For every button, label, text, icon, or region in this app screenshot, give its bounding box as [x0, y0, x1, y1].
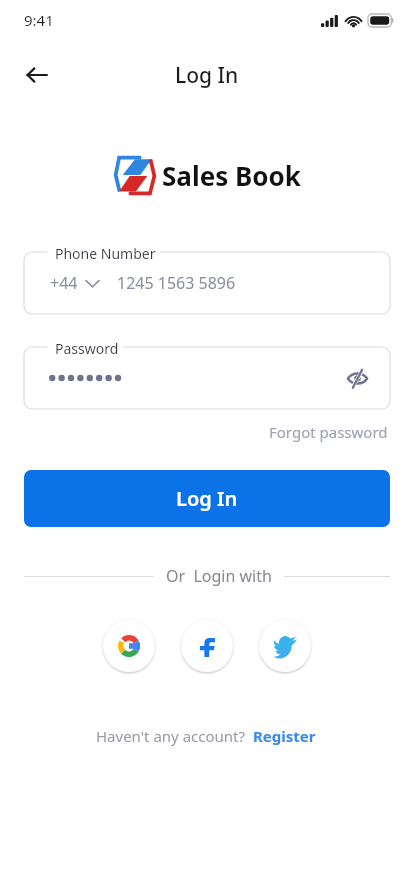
staticText: Sales Book — [162, 158, 301, 193]
button[interactable]: +44 — [48, 268, 101, 298]
staticText: +44 — [50, 272, 78, 294]
staticText: Log In — [175, 61, 239, 90]
button[interactable]: Sign in with Facebook — [181, 620, 233, 672]
button[interactable]: Sign in with Google — [103, 620, 155, 672]
button[interactable]: Log In — [24, 470, 390, 527]
staticText: Register — [253, 726, 316, 746]
staticText: Phone Number — [55, 244, 156, 263]
staticText: 1245 1563 5896 — [117, 272, 236, 294]
staticText: Haven't any account? — [96, 726, 246, 746]
staticText: Or Login with — [166, 565, 272, 587]
button[interactable]: Back — [14, 52, 60, 98]
button[interactable]: Forgot password — [267, 419, 390, 445]
staticText: 9:41 — [24, 10, 54, 30]
staticText: Forgot password — [269, 422, 388, 442]
button[interactable]: Sign in with Twitter — [259, 620, 311, 672]
button[interactable]: Show password — [340, 361, 374, 395]
button[interactable]: Register — [251, 723, 318, 749]
staticText: Log In — [176, 485, 238, 512]
staticText: Password — [55, 339, 119, 358]
